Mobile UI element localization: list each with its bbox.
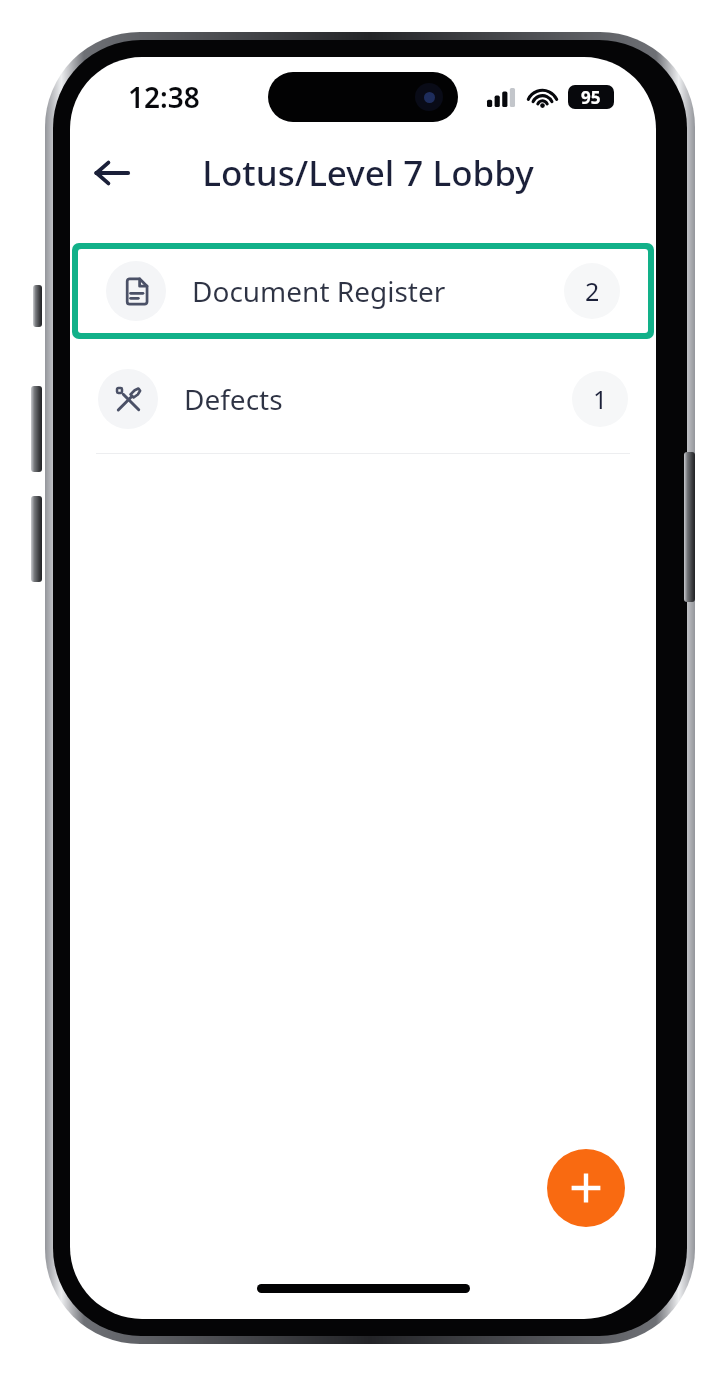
staticText: 95 bbox=[581, 86, 601, 109]
staticText: Defects bbox=[184, 380, 283, 418]
button[interactable]: Defects bbox=[70, 351, 656, 447]
staticText: Lotus/Level 7 Lobby bbox=[202, 149, 534, 197]
staticText: 12:38 bbox=[128, 78, 200, 116]
staticText: 2 bbox=[585, 274, 600, 308]
button[interactable]: Add bbox=[547, 1149, 625, 1227]
staticText: 1 bbox=[593, 382, 608, 416]
staticText: Document Register bbox=[192, 272, 446, 310]
button[interactable]: Document Register bbox=[72, 243, 654, 339]
button[interactable]: Back bbox=[80, 141, 144, 205]
